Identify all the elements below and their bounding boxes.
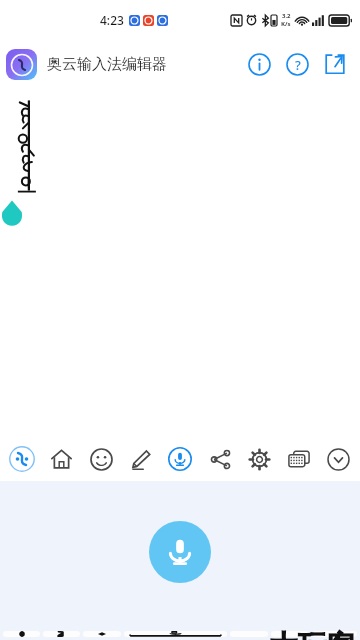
staticText: 3.2	[282, 12, 291, 20]
button[interactable]: Home	[43, 441, 79, 477]
staticText: ?	[295, 56, 301, 74]
button[interactable]: Mongolian letter	[43, 631, 80, 637]
button[interactable]: Collapse	[320, 441, 356, 477]
button[interactable]: Start voice input	[149, 521, 211, 583]
button[interactable]: Mongolian IME	[4, 441, 40, 477]
button[interactable]: Share	[316, 45, 354, 83]
button[interactable]: Help	[278, 45, 316, 83]
button[interactable]: Space, voice input	[124, 631, 227, 637]
button[interactable]: Info	[240, 45, 278, 83]
staticText: 大玩客	[269, 628, 356, 640]
button[interactable]: Share	[202, 441, 238, 477]
staticText: 4:23	[100, 12, 124, 28]
button[interactable]: App icon	[6, 49, 37, 80]
staticText: K/s	[281, 20, 291, 28]
button[interactable]: Switch language	[3, 631, 40, 637]
button[interactable]: Period	[271, 631, 309, 637]
button[interactable]: Punctuation	[83, 631, 121, 637]
staticText: 奥云输入法编辑器	[47, 55, 167, 74]
button[interactable]	[0, 88, 360, 437]
button[interactable]: Emoji	[83, 441, 119, 477]
button[interactable]: Settings	[241, 441, 277, 477]
button[interactable]: Enter	[312, 631, 357, 637]
button[interactable]: Handwriting	[122, 441, 158, 477]
button[interactable]: Voice input	[162, 441, 198, 477]
button[interactable]: Keyboard	[281, 441, 317, 477]
